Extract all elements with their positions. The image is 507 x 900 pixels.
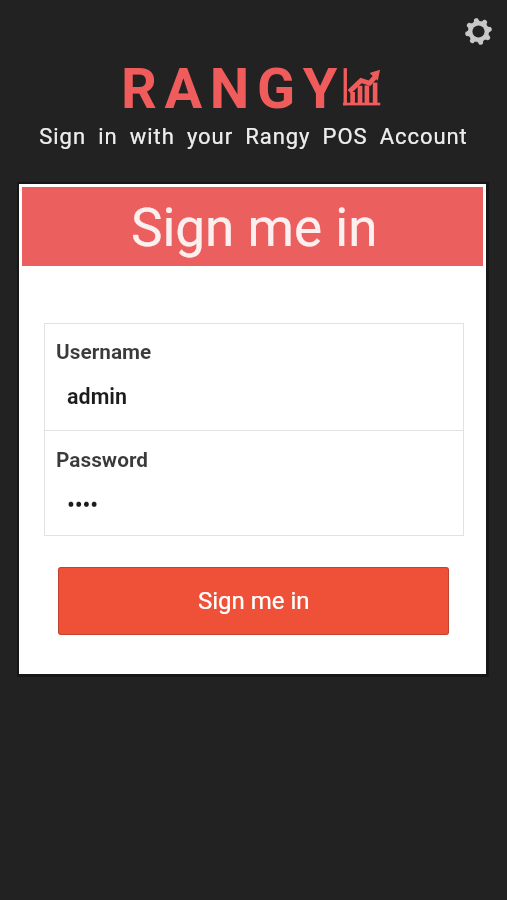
staticText: Sign me in [131,197,378,259]
button[interactable]: Sign me in [58,567,449,635]
button[interactable]: Settings [454,7,503,56]
staticText: Username [56,340,152,364]
staticText: Password [56,448,149,472]
button[interactable]: Password [44,431,464,536]
staticText: Sign in with your Rangy POS Account [39,124,468,150]
staticText: •••• [67,492,98,517]
staticText: admin [67,384,128,409]
staticText: RANGY [121,56,346,122]
staticText: Sign me in [198,587,310,615]
button[interactable]: Username [44,323,464,430]
